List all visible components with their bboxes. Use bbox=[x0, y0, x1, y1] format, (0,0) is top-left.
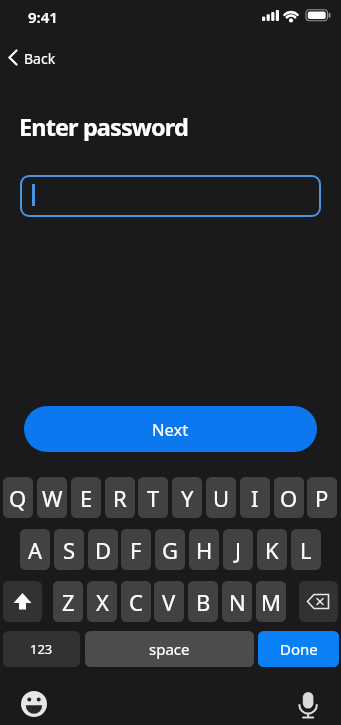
button[interactable]: Z bbox=[53, 581, 83, 622]
button[interactable]: F bbox=[121, 529, 151, 570]
staticText: 9:41 bbox=[28, 7, 58, 27]
staticText: Y bbox=[181, 483, 194, 513]
button[interactable]: D bbox=[88, 529, 118, 570]
button[interactable] bbox=[6, 44, 66, 72]
button[interactable]: space bbox=[85, 631, 254, 667]
button[interactable] bbox=[299, 581, 338, 622]
button[interactable]: Next bbox=[24, 406, 317, 452]
staticText: 123 bbox=[30, 640, 53, 658]
button[interactable]: E bbox=[71, 477, 101, 518]
button[interactable] bbox=[3, 581, 42, 622]
staticText: P bbox=[315, 483, 329, 513]
button[interactable] bbox=[20, 175, 321, 217]
button[interactable]: W bbox=[37, 477, 67, 518]
staticText: B bbox=[196, 587, 211, 617]
staticText: O bbox=[280, 483, 298, 513]
button[interactable]: 123 bbox=[3, 631, 80, 667]
staticText: M bbox=[261, 587, 281, 617]
staticText: E bbox=[80, 483, 93, 513]
button[interactable]: I bbox=[240, 477, 270, 518]
staticText: W bbox=[42, 483, 63, 513]
button[interactable]: K bbox=[257, 529, 287, 570]
staticText: J bbox=[235, 535, 242, 565]
staticText: R bbox=[113, 483, 127, 513]
staticText: H bbox=[196, 535, 213, 565]
button[interactable]: V bbox=[154, 581, 184, 622]
staticText: T bbox=[147, 483, 160, 513]
button[interactable]: N bbox=[222, 581, 252, 622]
button[interactable]: G bbox=[155, 529, 185, 570]
staticText: C bbox=[129, 587, 143, 617]
button[interactable]: Y bbox=[172, 477, 202, 518]
button[interactable]: O bbox=[274, 477, 304, 518]
staticText: D bbox=[95, 535, 112, 565]
button[interactable]: Q bbox=[3, 477, 33, 518]
button[interactable]: S bbox=[54, 529, 84, 570]
staticText: Z bbox=[62, 587, 75, 617]
button[interactable]: Done bbox=[258, 631, 339, 667]
staticText: L bbox=[300, 535, 312, 565]
button[interactable]: A bbox=[20, 529, 50, 570]
button[interactable]: P bbox=[307, 477, 337, 518]
staticText: A bbox=[28, 535, 43, 565]
button[interactable]: H bbox=[189, 529, 219, 570]
staticText: Done bbox=[280, 639, 318, 659]
staticText: V bbox=[162, 587, 176, 617]
staticText: U bbox=[213, 483, 230, 513]
button[interactable]: X bbox=[87, 581, 117, 622]
staticText: I bbox=[251, 483, 259, 513]
button[interactable]: J bbox=[223, 529, 253, 570]
staticText: Q bbox=[9, 483, 27, 513]
staticText: F bbox=[130, 535, 142, 565]
button[interactable]: B bbox=[188, 581, 218, 622]
staticText: G bbox=[162, 535, 179, 565]
button[interactable] bbox=[20, 690, 48, 718]
button[interactable] bbox=[294, 690, 322, 718]
button[interactable]: C bbox=[121, 581, 151, 622]
button[interactable]: T bbox=[138, 477, 168, 518]
staticText: X bbox=[96, 587, 109, 617]
button[interactable]: U bbox=[206, 477, 236, 518]
staticText: Enter password bbox=[19, 111, 188, 141]
staticText: space bbox=[149, 639, 190, 659]
staticText: N bbox=[229, 587, 246, 617]
staticText: Back bbox=[24, 49, 56, 68]
staticText: S bbox=[63, 535, 76, 565]
staticText: K bbox=[265, 535, 279, 565]
button[interactable]: R bbox=[105, 477, 135, 518]
button[interactable]: M bbox=[256, 581, 286, 622]
staticText: Next bbox=[152, 418, 189, 440]
button[interactable]: L bbox=[291, 529, 321, 570]
